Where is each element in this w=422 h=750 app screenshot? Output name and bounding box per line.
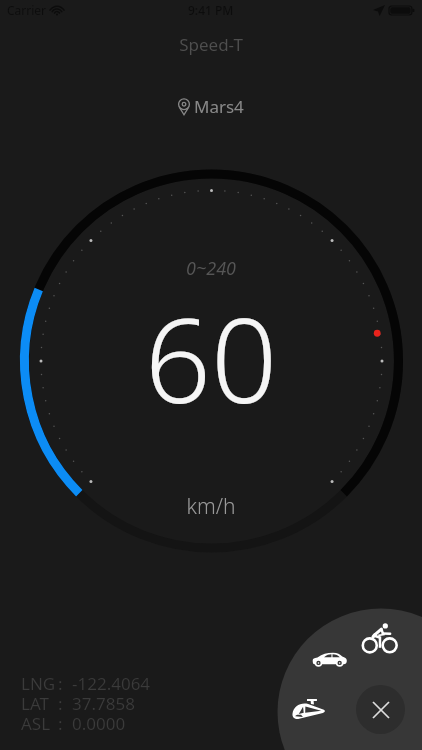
- staticText: km/h: [0, 492, 422, 521]
- staticText: 37.7858: [72, 692, 135, 712]
- staticText: :: [58, 692, 63, 712]
- button[interactable]: Close: [356, 685, 405, 734]
- staticText: Carrier: [7, 2, 47, 18]
- button[interactable]: Train mode: [292, 699, 325, 720]
- staticText: Speed-T: [0, 33, 422, 56]
- staticText: LNG: [21, 672, 56, 692]
- button[interactable]: Car mode: [312, 652, 347, 666]
- staticText: 60: [0, 279, 422, 437]
- staticText: 0~240: [0, 256, 422, 281]
- button[interactable]: Bicycle mode: [361, 623, 397, 654]
- staticText: 0.0000: [72, 712, 126, 732]
- staticText: ASL: [21, 712, 51, 732]
- staticText: :: [58, 672, 63, 692]
- staticText: 9:41 PM: [188, 2, 234, 18]
- staticText: Mars4: [194, 95, 244, 118]
- staticText: LAT: [21, 692, 50, 712]
- staticText: -122.4064: [72, 672, 151, 692]
- staticText: :: [58, 712, 63, 732]
